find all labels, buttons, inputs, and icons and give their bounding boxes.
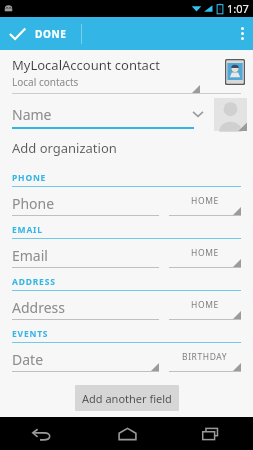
staticText: 1:07 [227,1,249,16]
staticText: EMAIL [12,224,43,236]
staticText: DONE [35,27,67,41]
button[interactable]: Address [12,294,159,320]
button[interactable]: MyLocalAccount contact [0,50,253,94]
button[interactable]: Home [92,417,162,450]
button[interactable]: HOME [169,190,241,216]
staticText: Add organization [12,139,117,157]
staticText: MyLocalAccount contact [12,56,160,74]
staticText: HOME [191,299,219,311]
staticText: ADDRESS [12,276,56,288]
button[interactable]: Expand name fields [190,106,206,122]
button[interactable]: Date [12,346,159,372]
staticText: HOME [191,247,219,259]
button[interactable]: Add organization [0,134,253,162]
staticText: Phone [12,194,55,213]
staticText: EVENTS [12,328,49,340]
button[interactable]: Name [12,99,194,129]
button[interactable]: Add contact photo [214,98,247,131]
staticText: Name [12,105,52,124]
button[interactable]: Phone [12,190,159,216]
staticText: BIRTHDAY [182,351,228,363]
button[interactable]: Add another field [75,385,179,411]
staticText: Add another field [82,391,172,406]
button[interactable]: Email [12,242,159,268]
button[interactable]: HOME [169,242,241,268]
staticText: Email [12,246,48,265]
staticText: Local contacts [12,75,79,89]
button[interactable]: Back [7,417,77,450]
button[interactable]: Recent apps [176,417,246,450]
button[interactable]: More options [232,17,253,50]
button[interactable]: BIRTHDAY [169,346,241,372]
button[interactable]: HOME [169,294,241,320]
staticText: Date [12,350,44,369]
staticText: HOME [191,195,219,207]
staticText: PHONE [12,172,47,184]
button[interactable]: DONE [0,27,79,41]
staticText: Address [12,298,65,317]
